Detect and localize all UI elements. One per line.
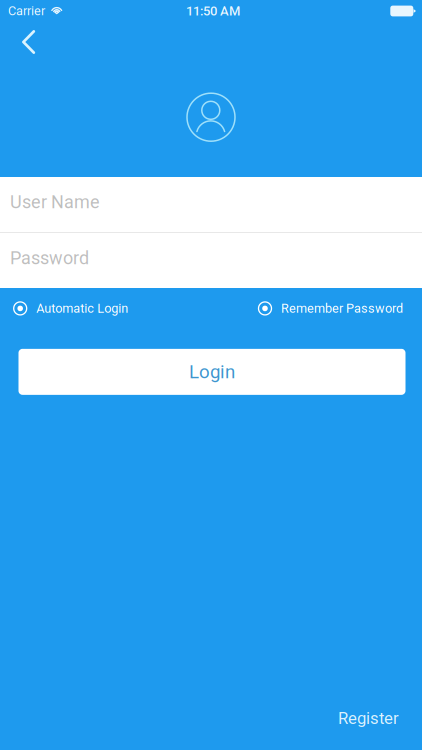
button[interactable]: Automatic Login [14, 295, 128, 322]
staticText: Password [10, 247, 89, 269]
staticText: Login [189, 361, 235, 383]
button[interactable]: Register [328, 702, 399, 734]
staticText: Remember Password [281, 301, 403, 316]
staticText: Carrier [8, 4, 45, 18]
button[interactable]: Remember Password [258, 295, 403, 322]
button[interactable]: User Name [0, 177, 422, 232]
staticText: User Name [10, 191, 100, 213]
button[interactable]: Login [18, 349, 405, 395]
staticText: Automatic Login [36, 301, 128, 316]
button[interactable]: Back [0, 22, 51, 62]
staticText: 11:50 AM [186, 3, 240, 19]
staticText: Register [338, 708, 399, 728]
button[interactable]: Password [0, 233, 422, 288]
